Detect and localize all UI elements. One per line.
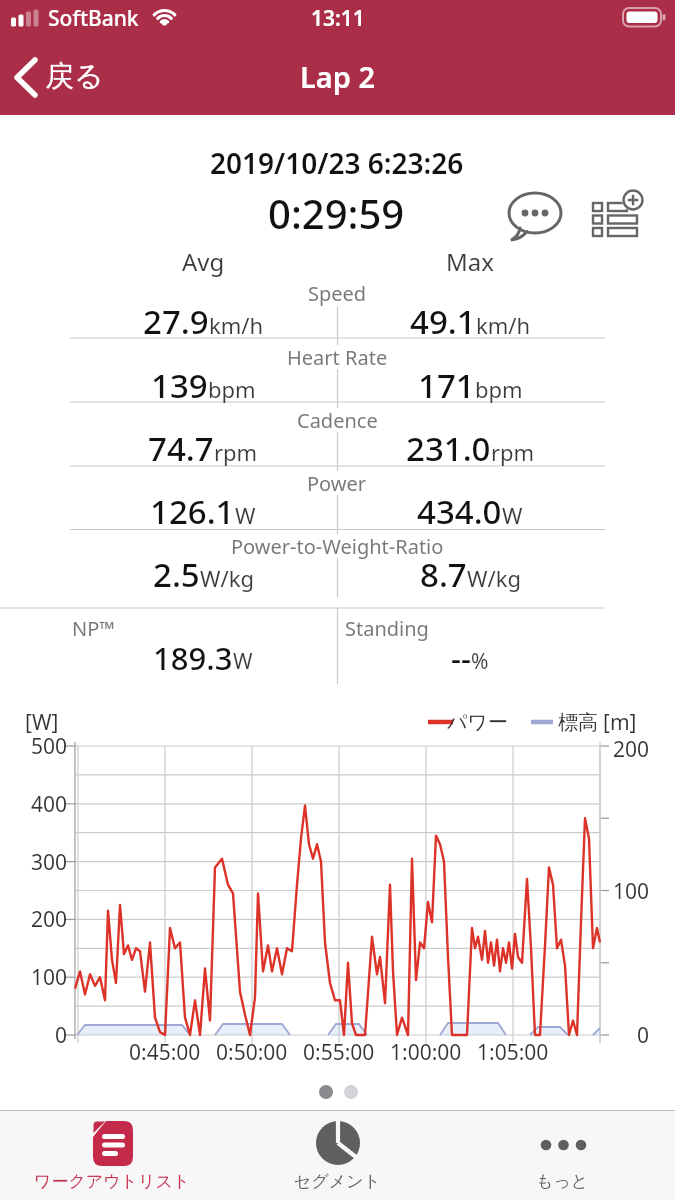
button[interactable]: もっと xyxy=(450,1110,675,1200)
staticText: NP™ xyxy=(72,615,115,642)
staticText: bpm xyxy=(475,374,523,404)
staticText: W xyxy=(233,647,253,676)
staticText: Heart Rate xyxy=(287,344,388,371)
staticText: 500 xyxy=(31,732,68,761)
staticText: もっと xyxy=(536,1171,589,1192)
staticText: -- xyxy=(451,637,471,679)
staticText: [m] xyxy=(603,708,637,737)
staticText: 0:45:00 xyxy=(129,1038,201,1067)
staticText: W xyxy=(502,500,523,530)
staticText: 171 xyxy=(418,363,475,408)
staticText: 189.3 xyxy=(153,637,233,679)
staticText: Cadence xyxy=(297,407,378,434)
staticText: 49.1 xyxy=(410,299,476,344)
staticText: rpm xyxy=(214,437,258,467)
staticText: 400 xyxy=(31,790,68,819)
button[interactable] xyxy=(592,190,646,244)
staticText: Power-to-Weight-Ratio xyxy=(231,533,444,560)
staticText: SoftBank xyxy=(48,4,139,32)
staticText: 標高 xyxy=(558,710,598,735)
button[interactable]: セグメント xyxy=(225,1110,450,1200)
staticText: 100 xyxy=(613,877,650,906)
staticText: bpm xyxy=(208,374,256,404)
staticText: 13:11 xyxy=(311,4,365,33)
staticText: Lap 2 xyxy=(300,57,376,96)
button[interactable] xyxy=(507,189,565,241)
staticText: 139 xyxy=(151,363,208,408)
staticText: Max xyxy=(446,245,494,278)
staticText: 0:55:00 xyxy=(303,1038,375,1067)
staticText: 戻る xyxy=(45,58,104,95)
staticText: 200 xyxy=(613,735,650,764)
staticText: W xyxy=(235,500,256,530)
staticText: 231.0 xyxy=(406,426,491,471)
staticText: 1:00:00 xyxy=(390,1038,462,1067)
staticText: 126.1 xyxy=(150,489,235,534)
staticText: 0 xyxy=(55,1021,68,1050)
staticText: 27.9 xyxy=(143,299,209,344)
staticText: W/kg xyxy=(200,563,254,593)
staticText: Speed xyxy=(308,280,367,307)
staticText: 2019/10/23 6:23:26 xyxy=(210,144,464,182)
staticText: 200 xyxy=(31,905,68,934)
staticText: 0 xyxy=(637,1021,650,1050)
staticText: セグメント xyxy=(294,1171,381,1192)
staticText: ワークアウトリスト xyxy=(34,1171,191,1192)
staticText: 2.5 xyxy=(153,552,200,597)
staticText: Avg xyxy=(182,245,225,278)
staticText: 0:50:00 xyxy=(216,1038,288,1067)
staticText: 74.7 xyxy=(148,426,214,471)
staticText: 0:29:59 xyxy=(268,186,405,240)
button[interactable]: ワークアウトリスト xyxy=(0,1110,225,1200)
staticText: Standing xyxy=(345,615,429,642)
staticText: 300 xyxy=(31,848,68,877)
staticText: km/h xyxy=(209,310,264,340)
staticText: 1:05:00 xyxy=(477,1038,549,1067)
staticText: パワー xyxy=(447,710,508,735)
staticText: rpm xyxy=(491,437,535,467)
button[interactable]: 戻る xyxy=(8,48,120,104)
staticText: 434.0 xyxy=(417,489,502,534)
staticText: [W] xyxy=(25,708,59,737)
staticText: % xyxy=(471,647,489,676)
staticText: 100 xyxy=(31,963,68,992)
staticText: W/kg xyxy=(467,563,521,593)
staticText: Power xyxy=(307,470,367,497)
staticText: km/h xyxy=(476,310,531,340)
staticText: 8.7 xyxy=(420,552,467,597)
